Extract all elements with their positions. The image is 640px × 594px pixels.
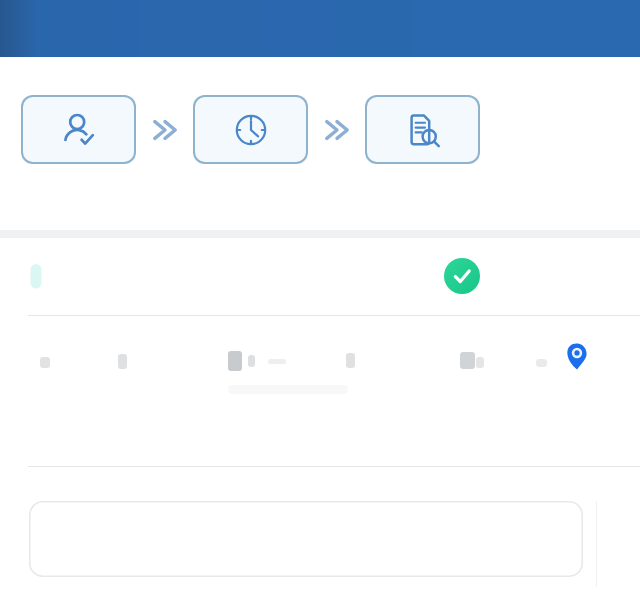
button[interactable]: Time slot step xyxy=(193,95,308,164)
button[interactable]: Open map location xyxy=(560,339,594,373)
button[interactable] xyxy=(29,501,583,577)
button[interactable]: Open map location xyxy=(0,316,640,466)
button[interactable]: Completed xyxy=(0,238,640,315)
button[interactable]: Completed xyxy=(443,257,481,295)
button[interactable]: Review document step xyxy=(365,95,480,164)
button[interactable]: Customer details step xyxy=(21,95,136,164)
